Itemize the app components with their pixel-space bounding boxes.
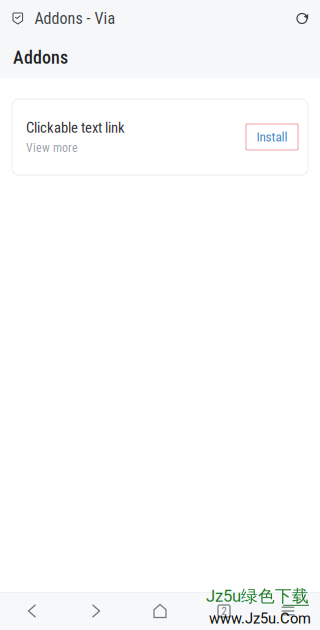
staticText: Clickable text link bbox=[26, 119, 125, 136]
button[interactable]: Tabs bbox=[192, 589, 256, 630]
button[interactable]: Reload bbox=[287, 3, 317, 33]
staticText: View more bbox=[26, 141, 78, 155]
button[interactable]: Home bbox=[128, 589, 192, 630]
staticText: Addons - Via bbox=[35, 9, 116, 28]
button[interactable]: Forward bbox=[64, 589, 128, 630]
button[interactable]: Clickable text link bbox=[12, 99, 308, 175]
button[interactable]: Menu bbox=[256, 589, 320, 630]
staticText: Jz5u绿色下载 bbox=[206, 586, 309, 607]
button[interactable]: Back bbox=[0, 589, 64, 630]
staticText: Addons bbox=[13, 47, 68, 68]
staticText: www.Jz5u.Com bbox=[209, 610, 311, 627]
staticText: 2 bbox=[221, 605, 226, 617]
staticText: Install bbox=[256, 129, 287, 145]
